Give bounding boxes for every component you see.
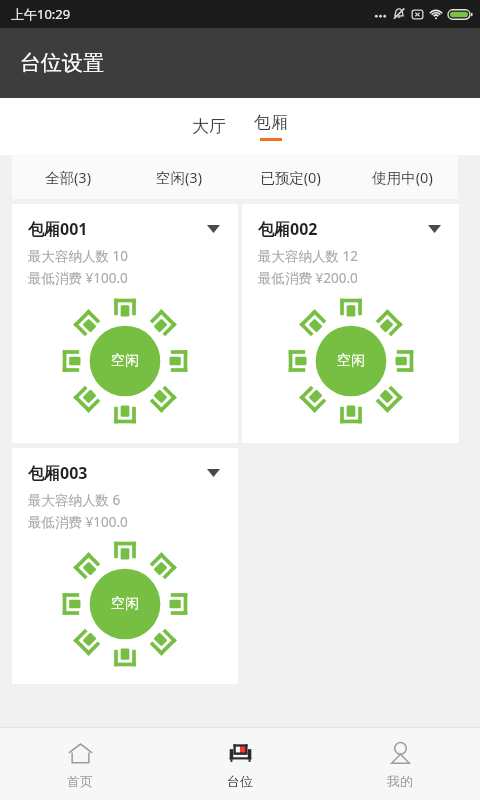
button[interactable]: 我的 — [320, 728, 480, 800]
staticText: 使用中(0) — [372, 167, 433, 187]
button[interactable]: 空闲(3) — [123, 155, 234, 199]
button[interactable]: 已预定(0) — [234, 155, 346, 199]
button[interactable]: 包厢 — [242, 108, 300, 145]
button[interactable]: 大厅 — [180, 106, 238, 147]
button[interactable]: 首页 — [0, 728, 160, 800]
staticText: 包厢 — [254, 112, 288, 133]
staticText: 包厢002 — [258, 218, 318, 240]
staticText: 全部(3) — [45, 167, 91, 187]
staticText: 台位 — [227, 773, 253, 789]
staticText: 台位设置 — [20, 50, 104, 76]
button[interactable]: 包厢001 — [12, 204, 238, 443]
staticText: 最低消费 ¥100.0 — [28, 513, 128, 531]
staticText: 最大容纳人数 6 — [28, 491, 121, 509]
staticText: 最大容纳人数 10 — [28, 247, 128, 265]
button[interactable]: 包厢002 — [242, 204, 459, 443]
staticText: 我的 — [387, 773, 413, 789]
staticText: 最低消费 ¥200.0 — [258, 269, 358, 287]
staticText: 大厅 — [192, 116, 226, 137]
button[interactable]: 包厢003 — [12, 448, 238, 684]
button[interactable]: 展开 包厢001 — [202, 218, 224, 240]
staticText: 首页 — [67, 773, 93, 789]
button[interactable]: 台位 — [160, 728, 320, 800]
staticText: 包厢003 — [28, 462, 88, 484]
button[interactable]: 展开 包厢002 — [423, 218, 445, 240]
staticText: 最大容纳人数 12 — [258, 247, 358, 265]
staticText: 空闲(3) — [156, 167, 202, 187]
staticText: 空闲 — [111, 595, 139, 613]
staticText: 已预定(0) — [260, 167, 321, 187]
staticText: 最低消费 ¥100.0 — [28, 269, 128, 287]
staticText: 空闲 — [111, 352, 139, 370]
staticText: 空闲 — [337, 352, 365, 370]
button[interactable]: 使用中(0) — [346, 155, 458, 199]
button[interactable]: 全部(3) — [12, 155, 123, 199]
staticText: 上午10:29 — [11, 5, 71, 23]
staticText: 包厢001 — [28, 218, 88, 240]
button[interactable]: 展开 包厢003 — [202, 462, 224, 484]
